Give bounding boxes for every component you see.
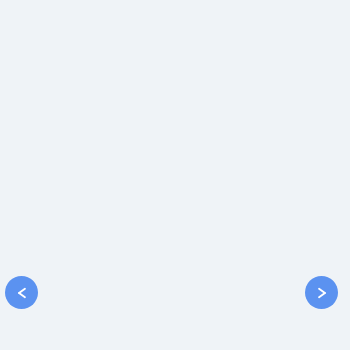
button[interactable]: Next [305,276,338,309]
button[interactable]: Previous [5,276,38,309]
